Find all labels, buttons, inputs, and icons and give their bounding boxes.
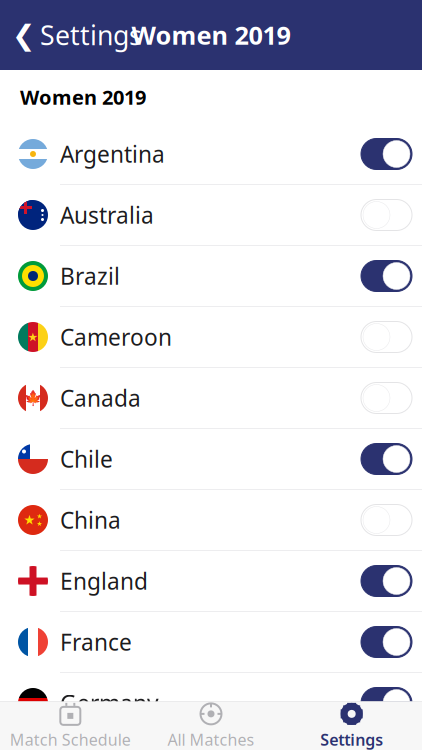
button[interactable]: England	[0, 551, 422, 612]
staticText: ★	[36, 520, 42, 528]
staticText: ★	[23, 512, 35, 527]
staticText: Argentina	[60, 139, 165, 169]
button[interactable]: All Matches	[141, 702, 281, 750]
button[interactable]: ❮	[0, 13, 142, 57]
staticText: Women 2019	[131, 18, 290, 52]
button[interactable]: Australia	[0, 185, 422, 246]
button[interactable]: Argentina	[0, 124, 422, 185]
staticText: ★	[36, 512, 42, 520]
staticText: Cameroon	[60, 322, 172, 352]
button[interactable]: 🍁	[0, 368, 422, 429]
staticText: France	[60, 627, 132, 657]
button[interactable]: ★	[0, 307, 422, 368]
staticText: Australia	[60, 200, 154, 230]
staticText: Settings	[320, 729, 383, 750]
staticText: Germany	[60, 688, 159, 718]
button[interactable]: France	[0, 612, 422, 673]
staticText: Women 2019	[20, 84, 146, 110]
button[interactable]: Germany	[0, 673, 422, 734]
staticText: 🍁	[24, 390, 42, 406]
staticText: England	[60, 566, 148, 596]
staticText: Settings	[40, 17, 142, 53]
button[interactable]: Settings	[281, 702, 422, 750]
button[interactable]: Chile	[0, 429, 422, 490]
button[interactable]: ★	[0, 490, 422, 551]
staticText: Match Schedule	[10, 729, 131, 750]
staticText: ❮	[12, 19, 35, 51]
staticText: Brazil	[60, 261, 120, 291]
staticText: ★	[27, 330, 38, 344]
staticText: Chile	[60, 444, 113, 474]
button[interactable]: Brazil	[0, 246, 422, 307]
staticText: All Matches	[167, 729, 254, 750]
staticText: Canada	[60, 383, 141, 413]
button[interactable]: Match Schedule	[0, 702, 141, 750]
button[interactable]: Italy	[0, 734, 422, 750]
staticText: China	[60, 505, 121, 535]
